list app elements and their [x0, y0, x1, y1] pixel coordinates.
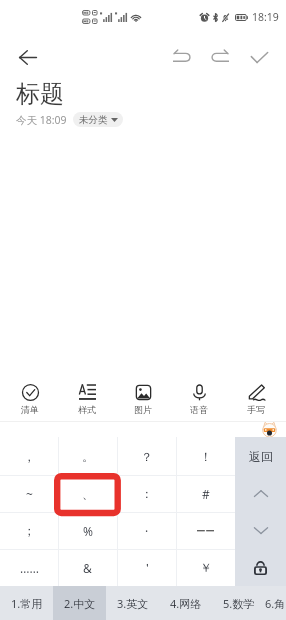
- button[interactable]: Done: [241, 39, 277, 75]
- button[interactable]: Undo: [163, 39, 199, 75]
- staticText: ；: [23, 523, 35, 538]
- button[interactable]: [235, 512, 286, 549]
- button[interactable]: ·: [117, 512, 176, 549]
- button[interactable]: #: [176, 475, 235, 512]
- button[interactable]: 图片: [117, 374, 169, 421]
- staticText: ……: [20, 560, 39, 576]
- staticText: 未分类: [79, 114, 108, 126]
- staticText: ：: [141, 486, 153, 501]
- button[interactable]: 5.数学: [212, 586, 265, 620]
- button[interactable]: 清单: [4, 374, 56, 421]
- staticText: 18:19: [252, 10, 279, 24]
- button[interactable]: [235, 549, 286, 586]
- button[interactable]: 手写: [230, 374, 282, 421]
- staticText: 6.角: [265, 596, 286, 611]
- staticText: 、: [82, 486, 94, 501]
- button[interactable]: %: [58, 512, 117, 549]
- button[interactable]: 。: [58, 437, 117, 475]
- staticText: ＇: [141, 560, 153, 575]
- staticText: 2.中文: [64, 596, 96, 611]
- staticText: ？: [141, 449, 153, 464]
- staticText: ~: [26, 486, 33, 502]
- staticText: ！: [200, 449, 212, 464]
- button[interactable]: Redo: [202, 39, 238, 75]
- staticText: 样式: [78, 404, 96, 415]
- button[interactable]: 1.常用: [0, 586, 53, 620]
- staticText: %: [83, 523, 93, 539]
- button[interactable]: Back: [11, 40, 45, 74]
- staticText: 手写: [247, 404, 265, 415]
- button[interactable]: 返回: [235, 437, 286, 475]
- button[interactable]: ；: [0, 512, 58, 549]
- button[interactable]: 、: [58, 475, 117, 512]
- button[interactable]: ？: [117, 437, 176, 475]
- button[interactable]: [176, 512, 235, 549]
- button[interactable]: ！: [176, 437, 235, 475]
- staticText: #: [202, 486, 210, 502]
- button[interactable]: 未分类: [73, 112, 123, 127]
- staticText: 1.常用: [11, 596, 43, 611]
- button[interactable]: Input method logo: [262, 422, 277, 437]
- button[interactable]: ……: [0, 549, 58, 586]
- button[interactable]: ￥: [176, 549, 235, 586]
- button[interactable]: 3.英文: [106, 586, 159, 620]
- button[interactable]: ，: [0, 437, 58, 475]
- staticText: 5.数学: [223, 596, 255, 611]
- button[interactable]: 6.角: [265, 586, 286, 620]
- button[interactable]: ：: [117, 475, 176, 512]
- staticText: 3.英文: [117, 596, 149, 611]
- button[interactable]: ＇: [117, 549, 176, 586]
- button[interactable]: 语音: [173, 374, 225, 421]
- staticText: ，: [23, 449, 35, 464]
- button[interactable]: &: [58, 549, 117, 586]
- staticText: ￥: [200, 560, 212, 575]
- staticText: 4.网络: [170, 596, 202, 611]
- button[interactable]: ~: [0, 475, 58, 512]
- staticText: ·: [145, 523, 149, 539]
- staticText: 图片: [134, 404, 152, 415]
- staticText: 清单: [21, 404, 39, 415]
- staticText: 。: [82, 449, 94, 464]
- staticText: 标题: [16, 79, 64, 109]
- button[interactable]: 2.中文: [53, 586, 106, 620]
- button[interactable]: [235, 475, 286, 512]
- staticText: 今天 18:09: [16, 113, 67, 127]
- button[interactable]: 样式: [61, 374, 113, 421]
- staticText: 语音: [190, 404, 208, 415]
- staticText: &: [83, 560, 92, 576]
- staticText: 返回: [249, 449, 273, 464]
- button[interactable]: 4.网络: [159, 586, 212, 620]
